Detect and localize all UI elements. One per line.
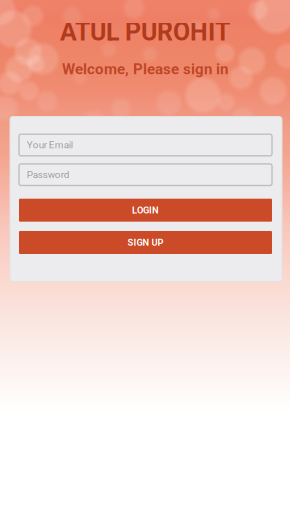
staticText: Your Email <box>27 139 73 151</box>
staticText: Password <box>27 169 70 180</box>
staticText: LOGIN <box>132 205 159 216</box>
button[interactable]: SIGN UP <box>19 231 272 254</box>
staticText: ATUL PUROHIT <box>60 17 230 47</box>
button[interactable]: LOGIN <box>19 199 272 222</box>
staticText: Welcome, Please sign in <box>62 60 228 78</box>
staticText: SIGN UP <box>127 237 163 248</box>
